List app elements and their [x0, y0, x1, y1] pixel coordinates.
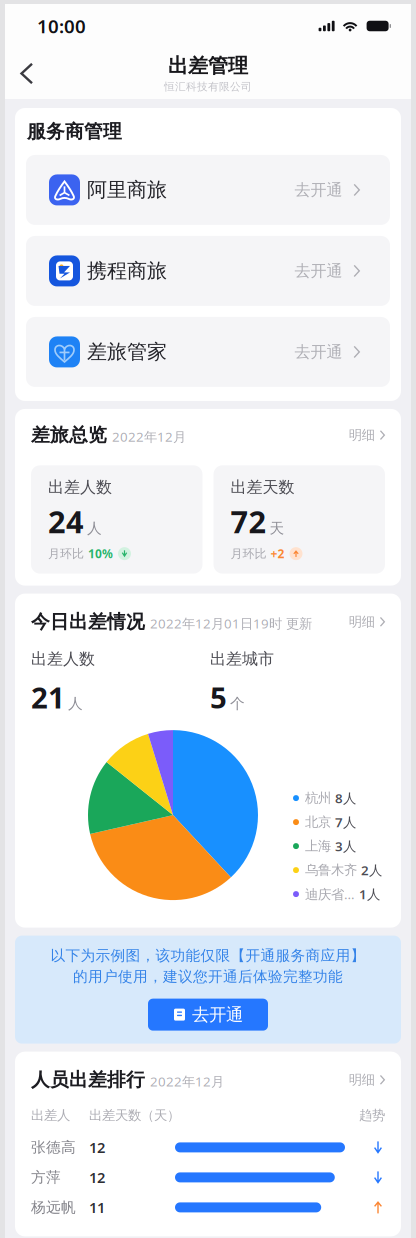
staticText: 月环比	[230, 546, 266, 561]
staticText: 今日出差情况	[31, 610, 145, 633]
staticText: 出差天数（天）	[89, 1107, 180, 1123]
staticText: 10:00	[37, 14, 86, 38]
staticText: 天	[269, 519, 284, 537]
staticText: 人	[68, 695, 83, 713]
button[interactable]: 差旅管家	[26, 317, 390, 387]
staticText: 12	[89, 1168, 105, 1187]
staticText: 服务商管理	[27, 120, 122, 143]
staticText: 差旅总览	[31, 424, 107, 447]
staticText: 12	[89, 1138, 105, 1157]
staticText: 明细	[349, 427, 375, 443]
staticText: 明细	[349, 614, 375, 630]
staticText: 出差人数	[48, 477, 112, 497]
staticText: 月环比	[48, 546, 84, 561]
staticText: 乌鲁木齐	[305, 862, 357, 878]
staticText: 出差人数	[31, 649, 95, 669]
staticText: 8人	[335, 789, 356, 807]
staticText: 出差人	[31, 1107, 70, 1123]
staticText: 2人	[361, 861, 382, 879]
staticText: 人员出差排行	[31, 1068, 145, 1091]
staticText: 明细	[349, 1072, 375, 1088]
button[interactable]: 去开通	[148, 999, 268, 1031]
staticText: 上海	[305, 838, 331, 854]
staticText: 去开通	[192, 1004, 243, 1025]
staticText: 24	[48, 501, 84, 542]
staticText: 2022年12月01日19时 更新	[150, 614, 312, 632]
staticText: 出差天数	[230, 477, 294, 497]
button[interactable]: 返回	[5, 53, 47, 93]
staticText: 去开通	[294, 261, 342, 281]
staticText: 7人	[335, 813, 356, 831]
button[interactable]: 携程商旅	[26, 236, 390, 306]
staticText: 差旅管家	[87, 340, 167, 364]
staticText: 21	[31, 678, 65, 717]
staticText: 出差管理	[168, 54, 248, 78]
staticText: 张德高	[31, 1138, 76, 1156]
staticText: 2022年12月	[150, 1072, 224, 1090]
staticText: 去开通	[294, 342, 342, 362]
staticText: 11	[89, 1198, 105, 1217]
staticText: 个	[230, 695, 245, 713]
staticText: 10%	[88, 546, 113, 562]
staticText: 3人	[335, 837, 356, 855]
staticText: 2022年12月	[112, 428, 186, 445]
staticText: 72	[230, 501, 266, 542]
staticText: 携程商旅	[87, 259, 167, 283]
button[interactable]: 明细	[343, 422, 385, 448]
staticText: 趋势	[359, 1107, 385, 1123]
staticText: 方萍	[31, 1168, 61, 1186]
staticText: +2	[270, 546, 284, 562]
staticText: 的用户使用，建议您开通后体验完整功能	[73, 968, 343, 986]
button[interactable]: 明细	[343, 609, 385, 635]
button[interactable]: 明细	[343, 1067, 385, 1093]
staticText: 人	[87, 519, 102, 537]
staticText: 5	[210, 678, 227, 717]
staticText: 恒汇科技有限公司	[164, 80, 252, 93]
staticText: 杨远帆	[31, 1198, 76, 1216]
staticText: 北京	[305, 814, 331, 830]
staticText: 阿里商旅	[87, 178, 167, 202]
button[interactable]: 阿里商旅	[26, 155, 390, 225]
staticText: 以下为示例图，该功能仅限【开通服务商应用】	[50, 947, 365, 965]
staticText: 1人	[359, 885, 380, 903]
staticText: 去开通	[294, 180, 342, 200]
staticText: 出差城市	[210, 649, 274, 669]
staticText: 杭州	[305, 790, 331, 806]
staticText: 迪庆省…	[305, 885, 355, 903]
